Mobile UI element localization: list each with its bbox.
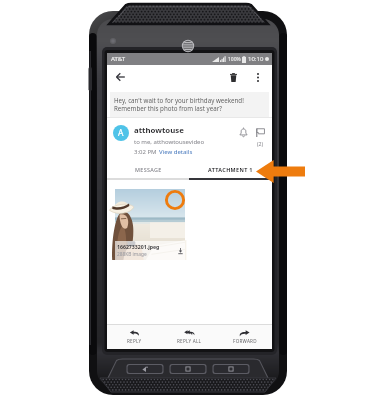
button[interactable]: FORWARD bbox=[217, 330, 272, 344]
staticText: to me, atthowtousevideo bbox=[134, 138, 205, 146]
button[interactable]: More options bbox=[248, 67, 268, 87]
staticText: REPLY ALL bbox=[177, 338, 202, 344]
button[interactable]: REPLY ALL bbox=[162, 330, 217, 344]
button[interactable]: REPLY bbox=[107, 330, 162, 344]
button[interactable]: MESSAGE bbox=[107, 161, 189, 178]
staticText: View details bbox=[159, 148, 193, 156]
staticText: (2) bbox=[257, 140, 264, 147]
staticText: FORWARD bbox=[233, 338, 257, 344]
staticText: atthowtouse bbox=[134, 125, 184, 136]
staticText: A bbox=[118, 127, 124, 139]
button[interactable]: 1662733201.jpeg bbox=[115, 189, 185, 260]
staticText: 3:02 PM bbox=[134, 148, 159, 156]
button[interactable]: Notifications bbox=[236, 125, 250, 139]
staticText: Hey, can't wait to for your birthday wee… bbox=[114, 96, 244, 112]
staticText: MESSAGE bbox=[135, 166, 162, 173]
staticText: 1662733201.jpeg bbox=[117, 243, 160, 250]
staticText: AT&T bbox=[111, 55, 126, 63]
staticText: ATTACHMENT 1 bbox=[208, 166, 253, 173]
staticText: 288KB image bbox=[117, 251, 147, 258]
staticText: 100% bbox=[228, 56, 241, 63]
staticText: REPLY bbox=[127, 338, 142, 344]
button[interactable]: Delete bbox=[223, 67, 243, 87]
button[interactable]: ATTACHMENT 1 bbox=[189, 161, 272, 178]
button[interactable]: Flag bbox=[253, 125, 267, 139]
staticText: 10:10 bbox=[248, 55, 264, 63]
button[interactable]: Back bbox=[111, 68, 129, 86]
